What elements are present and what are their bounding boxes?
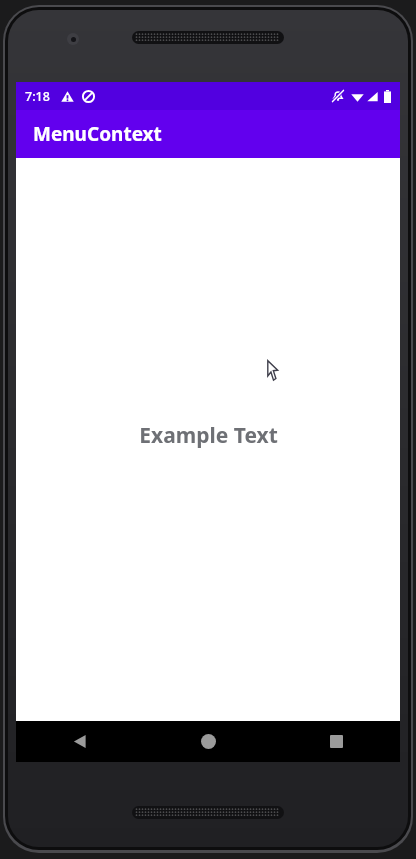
button[interactable]: MenuContext [16,110,400,158]
staticText: 7:18 [25,88,50,105]
button[interactable]: Home [144,721,272,762]
staticText: MenuContext [33,121,162,147]
button[interactable]: Back [16,721,144,762]
staticText: Example Text [139,421,278,450]
button[interactable]: Recent apps [272,721,400,762]
